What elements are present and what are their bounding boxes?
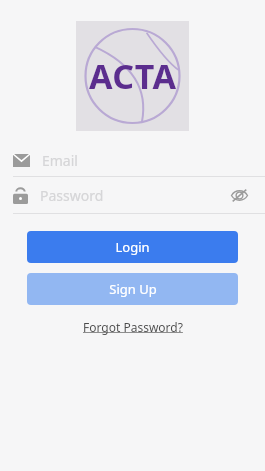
button[interactable]: Email xyxy=(0,145,265,176)
staticText: Sign Up xyxy=(109,280,157,298)
button[interactable]: Forgot Password? xyxy=(75,316,191,338)
button[interactable]: Login xyxy=(27,231,238,263)
staticText: Forgot Password? xyxy=(83,319,183,335)
staticText: ACTA xyxy=(89,53,177,99)
button[interactable]: Password xyxy=(0,177,265,213)
staticText: Password xyxy=(40,186,227,205)
staticText: Login xyxy=(115,238,150,256)
button[interactable]: Sign Up xyxy=(27,273,238,305)
button[interactable]: Toggle password visibility xyxy=(227,183,251,207)
staticText: Email xyxy=(42,151,78,170)
